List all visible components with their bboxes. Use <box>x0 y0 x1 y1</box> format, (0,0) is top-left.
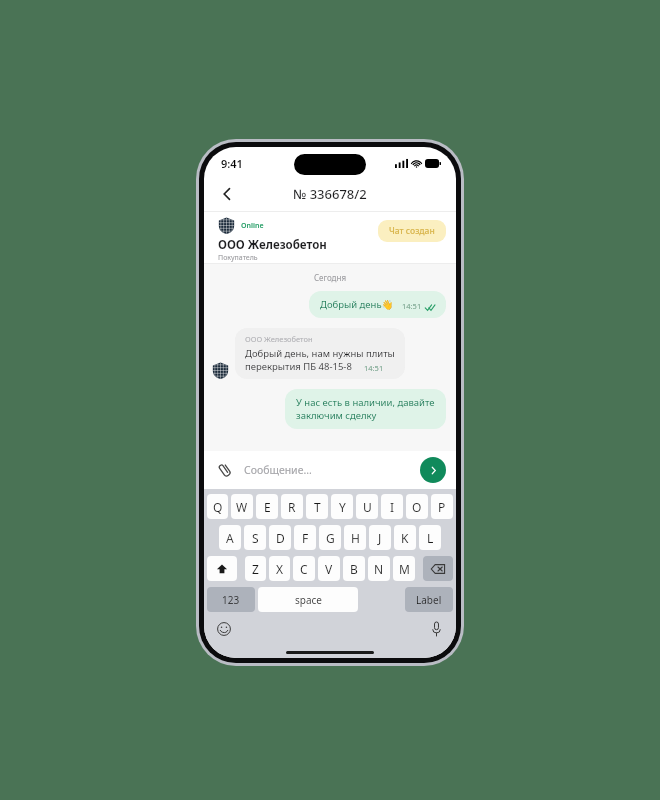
staticText: U <box>363 499 372 515</box>
staticText: R <box>288 499 296 515</box>
button[interactable]: R <box>281 494 303 519</box>
button[interactable]: Attach file <box>214 459 236 481</box>
staticText: W <box>236 499 248 515</box>
button[interactable]: I <box>381 494 403 519</box>
button[interactable]: Send <box>420 457 446 483</box>
button[interactable]: O <box>406 494 428 519</box>
button[interactable]: Backspace <box>423 556 453 581</box>
staticText: 14:51 <box>364 363 384 373</box>
button[interactable]: ООО Железобетон <box>235 328 405 379</box>
staticText: O <box>412 499 422 515</box>
button[interactable]: Чат создан <box>378 220 446 242</box>
staticText: T <box>314 499 321 515</box>
button[interactable]: Q <box>207 494 228 519</box>
button[interactable]: V <box>318 556 340 581</box>
button[interactable]: C <box>293 556 315 581</box>
staticText: C <box>300 561 308 577</box>
staticText: D <box>276 530 285 546</box>
button[interactable]: Сообщение... <box>244 463 420 477</box>
staticText: Y <box>339 499 346 515</box>
staticText: 123 <box>222 593 240 607</box>
button[interactable]: Back <box>212 179 242 209</box>
button[interactable]: Y <box>331 494 353 519</box>
staticText: Добрый день, нам нужны плиты <box>245 347 395 360</box>
button[interactable]: M <box>393 556 415 581</box>
button[interactable]: Добрый день👋 <box>309 291 446 318</box>
staticText: Сообщение... <box>244 463 312 477</box>
button[interactable]: G <box>319 525 341 550</box>
button[interactable]: F <box>294 525 316 550</box>
button[interactable]: L <box>419 525 441 550</box>
staticText: X <box>276 561 284 577</box>
button[interactable]: K <box>394 525 416 550</box>
button[interactable]: H <box>344 525 366 550</box>
staticText: V <box>325 561 333 577</box>
button[interactable]: N <box>368 556 390 581</box>
button[interactable]: Label <box>405 587 453 612</box>
button[interactable]: Emoji <box>216 621 232 637</box>
staticText: J <box>378 530 382 546</box>
staticText: ООО Железобетон <box>218 237 327 253</box>
button[interactable]: S <box>244 525 266 550</box>
staticText: 9:41 <box>221 156 243 171</box>
button[interactable]: E <box>256 494 278 519</box>
staticText: Покупатель <box>218 253 258 263</box>
button[interactable]: D <box>269 525 291 550</box>
staticText: Label <box>416 593 442 607</box>
button[interactable]: J <box>369 525 391 550</box>
button[interactable]: T <box>306 494 328 519</box>
button[interactable]: P <box>431 494 453 519</box>
staticText: A <box>226 530 234 546</box>
staticText: № 336678/2 <box>293 185 367 203</box>
button[interactable]: X <box>269 556 290 581</box>
staticText: 14:51 <box>402 301 422 311</box>
staticText: заключим сделку <box>296 409 377 422</box>
staticText: G <box>326 530 335 546</box>
staticText: Z <box>252 561 259 577</box>
staticText: P <box>438 499 446 515</box>
staticText: B <box>350 561 358 577</box>
staticText: Q <box>213 499 223 515</box>
staticText: Чат создан <box>389 225 435 237</box>
button[interactable]: A <box>219 525 241 550</box>
button[interactable]: 123 <box>207 587 255 612</box>
staticText: space <box>295 593 322 607</box>
staticText: N <box>374 561 384 577</box>
staticText: M <box>399 561 410 577</box>
staticText: S <box>252 530 259 546</box>
staticText: E <box>264 499 271 515</box>
button[interactable]: Shift <box>207 556 237 581</box>
button[interactable]: Voice input <box>428 621 444 637</box>
button[interactable]: U <box>356 494 378 519</box>
staticText: ООО Железобетон <box>245 334 313 344</box>
button[interactable]: W <box>231 494 253 519</box>
button[interactable]: space <box>258 587 358 612</box>
staticText: У нас есть в наличии, давайте <box>296 396 435 409</box>
staticText: Добрый день👋 <box>320 298 394 311</box>
staticText: L <box>427 530 434 546</box>
staticText: I <box>390 499 395 515</box>
staticText: перекрытия ПБ 48-15-8 <box>245 360 352 373</box>
staticText: Сегодня <box>204 272 456 283</box>
staticText: K <box>401 530 409 546</box>
staticText: H <box>351 530 360 546</box>
button[interactable]: У нас есть в наличии, давайте <box>285 389 446 429</box>
staticText: Online <box>241 221 264 231</box>
button[interactable]: Z <box>245 556 266 581</box>
button[interactable]: B <box>343 556 365 581</box>
staticText: F <box>302 530 309 546</box>
